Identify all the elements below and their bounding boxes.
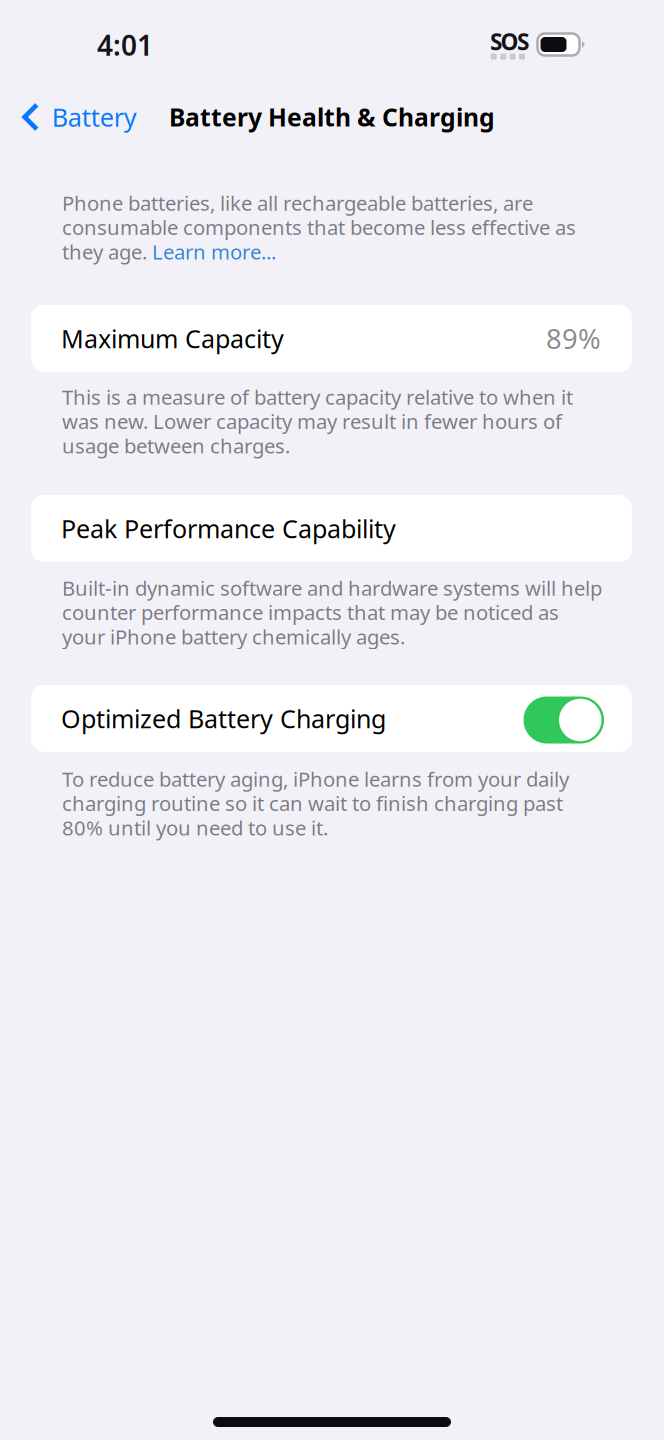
button[interactable]: Optimized Battery Charging xyxy=(520,695,601,742)
button[interactable]: Maximum Capacity xyxy=(31,305,632,372)
staticText: To reduce battery aging, iPhone learns f… xyxy=(62,765,569,841)
button[interactable]: Battery xyxy=(1,88,153,146)
staticText: 89% xyxy=(546,320,601,357)
staticText: Peak Performance Capability xyxy=(61,511,396,545)
staticText: SOS xyxy=(490,26,529,57)
staticText: Optimized Battery Charging xyxy=(61,701,386,735)
staticText: Built-in dynamic software and hardware s… xyxy=(62,574,602,650)
staticText: Battery xyxy=(52,100,137,134)
staticText: 4:01 xyxy=(97,26,153,64)
button[interactable]: Peak Performance Capability xyxy=(31,495,632,562)
staticText: This is a measure of battery capacity re… xyxy=(62,383,573,459)
staticText: Maximum Capacity xyxy=(61,321,284,355)
staticText: Phone batteries, like all rechargeable b… xyxy=(62,189,576,265)
staticText: Battery Health & Charging xyxy=(169,100,495,134)
